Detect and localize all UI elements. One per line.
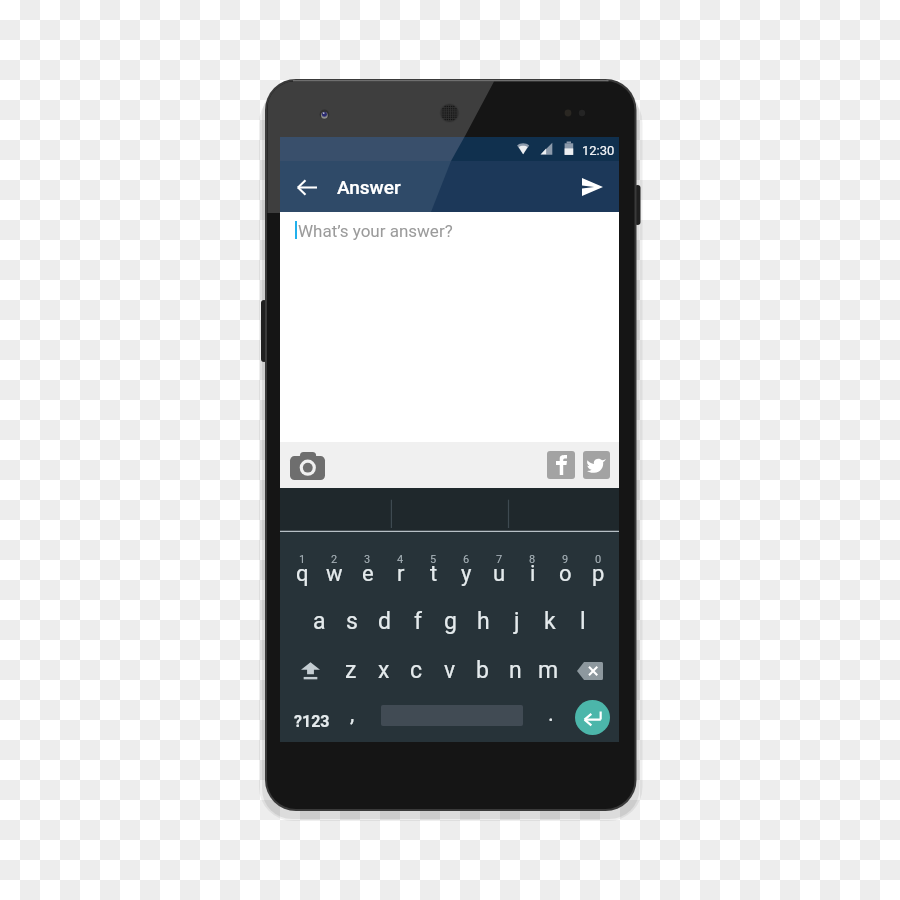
button[interactable]: 7 xyxy=(483,551,516,598)
staticText: 9 xyxy=(562,553,569,566)
button[interactable]: 4 xyxy=(384,551,417,598)
button[interactable]: 3 xyxy=(351,551,384,598)
button[interactable]: 9 xyxy=(549,551,582,598)
button[interactable]: Share on Facebook xyxy=(547,451,575,479)
button[interactable]: x xyxy=(367,647,400,694)
staticText: a xyxy=(313,608,326,635)
staticText: k xyxy=(544,608,556,635)
button[interactable]: Camera xyxy=(285,443,329,487)
staticText: e xyxy=(362,561,374,587)
staticText: 5 xyxy=(430,553,437,566)
staticText: s xyxy=(346,608,358,635)
button[interactable]: h xyxy=(467,598,500,645)
button[interactable]: v xyxy=(433,647,466,694)
button[interactable]: g xyxy=(434,598,467,645)
staticText: d xyxy=(378,608,391,635)
staticText: 3 xyxy=(364,553,371,566)
staticText: z xyxy=(345,657,357,684)
button[interactable]: Send xyxy=(573,168,611,206)
button[interactable]: b xyxy=(466,647,499,694)
button[interactable]: ?123 xyxy=(286,695,338,737)
staticText: . xyxy=(548,701,554,727)
button[interactable]: Shift xyxy=(286,647,335,694)
staticText: t xyxy=(430,561,438,587)
button[interactable]: l xyxy=(566,598,599,645)
button[interactable]: m xyxy=(532,647,565,694)
button[interactable]: c xyxy=(400,647,433,694)
button[interactable]: Enter xyxy=(575,700,610,735)
button[interactable]: 6 xyxy=(450,551,483,598)
staticText: w xyxy=(326,561,343,587)
staticText: m xyxy=(538,657,559,684)
button[interactable]: , xyxy=(339,703,365,729)
button[interactable]: 2 xyxy=(318,551,351,598)
button[interactable]: . xyxy=(538,703,564,729)
staticText: y xyxy=(461,561,472,587)
button[interactable]: z xyxy=(335,647,367,694)
staticText: p xyxy=(592,561,605,587)
button[interactable]: d xyxy=(368,598,401,645)
button[interactable]: 1 xyxy=(286,551,318,598)
staticText: c xyxy=(410,657,423,684)
staticText: ?123 xyxy=(294,712,330,731)
staticText: 12:30 xyxy=(582,143,615,158)
staticText: b xyxy=(476,657,489,684)
staticText: r xyxy=(397,561,405,587)
button[interactable]: 0 xyxy=(582,551,615,598)
button[interactable]: f xyxy=(401,598,434,645)
staticText: , xyxy=(350,701,355,727)
staticText: q xyxy=(296,561,309,587)
button[interactable]: n xyxy=(499,647,532,694)
staticText: l xyxy=(580,608,586,635)
staticText: 2 xyxy=(331,553,338,566)
button[interactable]: 5 xyxy=(417,551,450,598)
button[interactable]: Back xyxy=(288,168,326,206)
button[interactable]: j xyxy=(500,598,533,645)
staticText: 8 xyxy=(529,553,536,566)
staticText: What’s your answer? xyxy=(298,221,453,241)
staticText: v xyxy=(444,657,456,684)
button[interactable]: 8 xyxy=(516,551,549,598)
staticText: 7 xyxy=(496,553,503,566)
staticText: h xyxy=(477,608,490,635)
staticText: 4 xyxy=(397,553,404,566)
staticText: n xyxy=(509,657,522,684)
staticText: Answer xyxy=(337,176,401,198)
staticText: i xyxy=(530,561,536,587)
staticText: 6 xyxy=(463,553,470,566)
staticText: f xyxy=(414,608,422,635)
button[interactable]: Backspace xyxy=(565,647,615,694)
staticText: 0 xyxy=(595,553,602,566)
staticText: x xyxy=(378,657,390,684)
button[interactable]: a xyxy=(303,598,335,645)
button[interactable]: k xyxy=(533,598,566,645)
button[interactable]: s xyxy=(335,598,368,645)
staticText: u xyxy=(493,561,506,587)
button[interactable]: Share on Twitter xyxy=(583,451,610,479)
staticText: 1 xyxy=(299,553,306,566)
staticText: j xyxy=(514,608,520,635)
staticText: g xyxy=(444,608,457,635)
staticText: o xyxy=(559,561,572,587)
